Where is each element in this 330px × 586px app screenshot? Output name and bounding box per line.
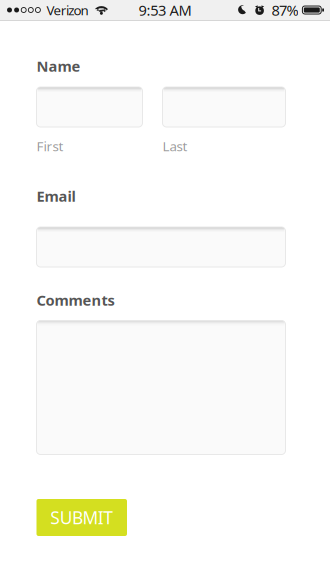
staticText: SUBMIT bbox=[50, 506, 113, 529]
staticText: 9:53 AM bbox=[139, 0, 191, 20]
staticText: Last bbox=[162, 137, 187, 155]
staticText: 87% bbox=[272, 0, 298, 20]
staticText: First bbox=[36, 137, 63, 155]
staticText: Verizon bbox=[46, 1, 89, 19]
staticText: Comments bbox=[36, 290, 114, 310]
staticText: Name bbox=[36, 56, 80, 76]
button[interactable]: SUBMIT bbox=[36, 499, 127, 536]
staticText: Email bbox=[36, 186, 75, 206]
